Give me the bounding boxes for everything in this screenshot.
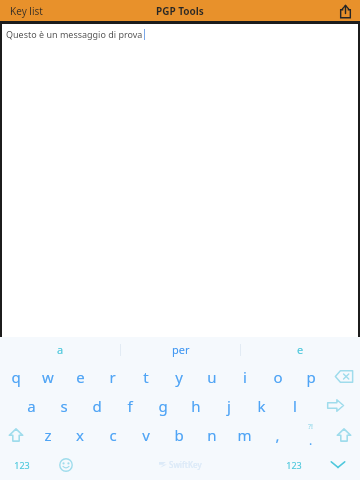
button[interactable]: Hide keyboard — [316, 449, 360, 480]
button[interactable]: ?! — [294, 420, 327, 449]
button[interactable]: Shift — [327, 420, 360, 449]
button[interactable]: a — [15, 391, 47, 420]
staticText: v — [142, 425, 150, 445]
button[interactable]: 123 — [0, 449, 44, 480]
button[interactable]: v — [129, 420, 162, 449]
staticText: n — [207, 425, 217, 445]
staticText: per — [172, 342, 190, 357]
button[interactable]: 123 — [272, 449, 316, 480]
button[interactable]: w — [32, 362, 64, 391]
button[interactable]: h — [179, 391, 212, 420]
staticText: p — [306, 367, 316, 387]
staticText: h — [191, 396, 201, 416]
staticText: z — [44, 425, 52, 445]
staticText: q — [11, 367, 21, 387]
staticText: w — [42, 367, 54, 387]
button[interactable]: m — [228, 420, 261, 449]
button[interactable]: x — [64, 420, 96, 449]
button[interactable]: , — [261, 420, 294, 449]
staticText: e — [297, 342, 304, 357]
button[interactable]: e — [64, 362, 96, 391]
button[interactable]: r — [96, 362, 129, 391]
staticText: , — [275, 425, 280, 445]
button[interactable]: z — [32, 420, 64, 449]
button[interactable]: g — [146, 391, 179, 420]
button[interactable]: k — [245, 391, 278, 420]
staticText: 123 — [286, 459, 302, 471]
staticText: 123 — [14, 459, 30, 471]
staticText: SwiftKey — [169, 459, 202, 470]
button[interactable]: a — [0, 337, 120, 362]
button[interactable]: p — [294, 362, 327, 391]
staticText: PGP Tools — [156, 4, 204, 18]
button[interactable]: Share — [338, 4, 352, 18]
staticText: o — [273, 367, 283, 387]
button[interactable]: y — [162, 362, 195, 391]
staticText: ?! — [308, 422, 313, 432]
button[interactable]: q — [0, 362, 32, 391]
button[interactable]: Shift — [0, 420, 32, 449]
staticText: x — [76, 425, 84, 445]
button[interactable]: o — [261, 362, 294, 391]
staticText: Key list — [10, 4, 43, 18]
button[interactable]: per — [121, 337, 240, 362]
staticText: c — [109, 425, 117, 445]
staticText: b — [174, 425, 184, 445]
staticText: a — [27, 396, 36, 416]
staticText: s — [60, 396, 68, 416]
button[interactable]: u — [195, 362, 228, 391]
button[interactable]: Backspace — [327, 362, 360, 391]
button[interactable]: e — [241, 337, 360, 362]
button[interactable]: Emoji — [44, 449, 88, 480]
button[interactable]: j — [212, 391, 245, 420]
button[interactable]: f — [113, 391, 146, 420]
button[interactable]: Space — [88, 449, 272, 480]
button[interactable]: s — [47, 391, 80, 420]
button[interactable]: l — [278, 391, 311, 420]
staticText: j — [227, 396, 231, 416]
staticText: u — [207, 367, 217, 387]
button[interactable]: t — [129, 362, 162, 391]
staticText: k — [257, 396, 266, 416]
staticText: e — [76, 367, 85, 387]
staticText: m — [237, 425, 252, 445]
button[interactable]: Enter — [311, 391, 360, 420]
staticText: y — [175, 367, 183, 387]
button[interactable]: c — [96, 420, 129, 449]
staticText: Questo è un messaggio di prova — [6, 28, 143, 40]
staticText: t — [143, 367, 149, 387]
staticText: d — [92, 396, 102, 416]
staticText: g — [158, 396, 168, 416]
staticText: . — [309, 432, 313, 448]
button[interactable]: Key list — [8, 2, 45, 20]
button[interactable]: d — [80, 391, 113, 420]
staticText: r — [109, 367, 116, 387]
button[interactable]: i — [228, 362, 261, 391]
staticText: a — [57, 342, 64, 357]
button[interactable]: n — [195, 420, 228, 449]
staticText: f — [127, 396, 133, 416]
button[interactable]: b — [162, 420, 195, 449]
staticText: l — [293, 396, 297, 416]
staticText: i — [243, 367, 247, 387]
